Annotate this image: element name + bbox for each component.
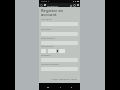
staticText: Last name xyxy=(41,28,52,31)
staticText: Already registered? xyxy=(51,78,70,81)
button[interactable]: Back xyxy=(69,4,72,7)
staticText: Email address xyxy=(41,37,55,40)
staticText: 10:19 xyxy=(41,0,47,3)
staticText: Date of birth xyxy=(41,45,54,48)
button[interactable]: Log in xyxy=(71,78,78,81)
button[interactable]: More options xyxy=(77,4,79,6)
staticText: Password xyxy=(41,54,51,57)
staticText: Register an account xyxy=(41,8,64,17)
button[interactable]: Tabs xyxy=(73,4,76,7)
staticText: First name xyxy=(41,18,52,21)
button[interactable]: Home xyxy=(58,85,62,89)
button[interactable]: Back xyxy=(40,4,43,7)
button[interactable]: Recent apps xyxy=(69,85,73,89)
staticText: Confirm password xyxy=(41,63,60,66)
staticText: Inventory xyxy=(47,4,59,7)
button[interactable]: Back xyxy=(46,85,50,89)
